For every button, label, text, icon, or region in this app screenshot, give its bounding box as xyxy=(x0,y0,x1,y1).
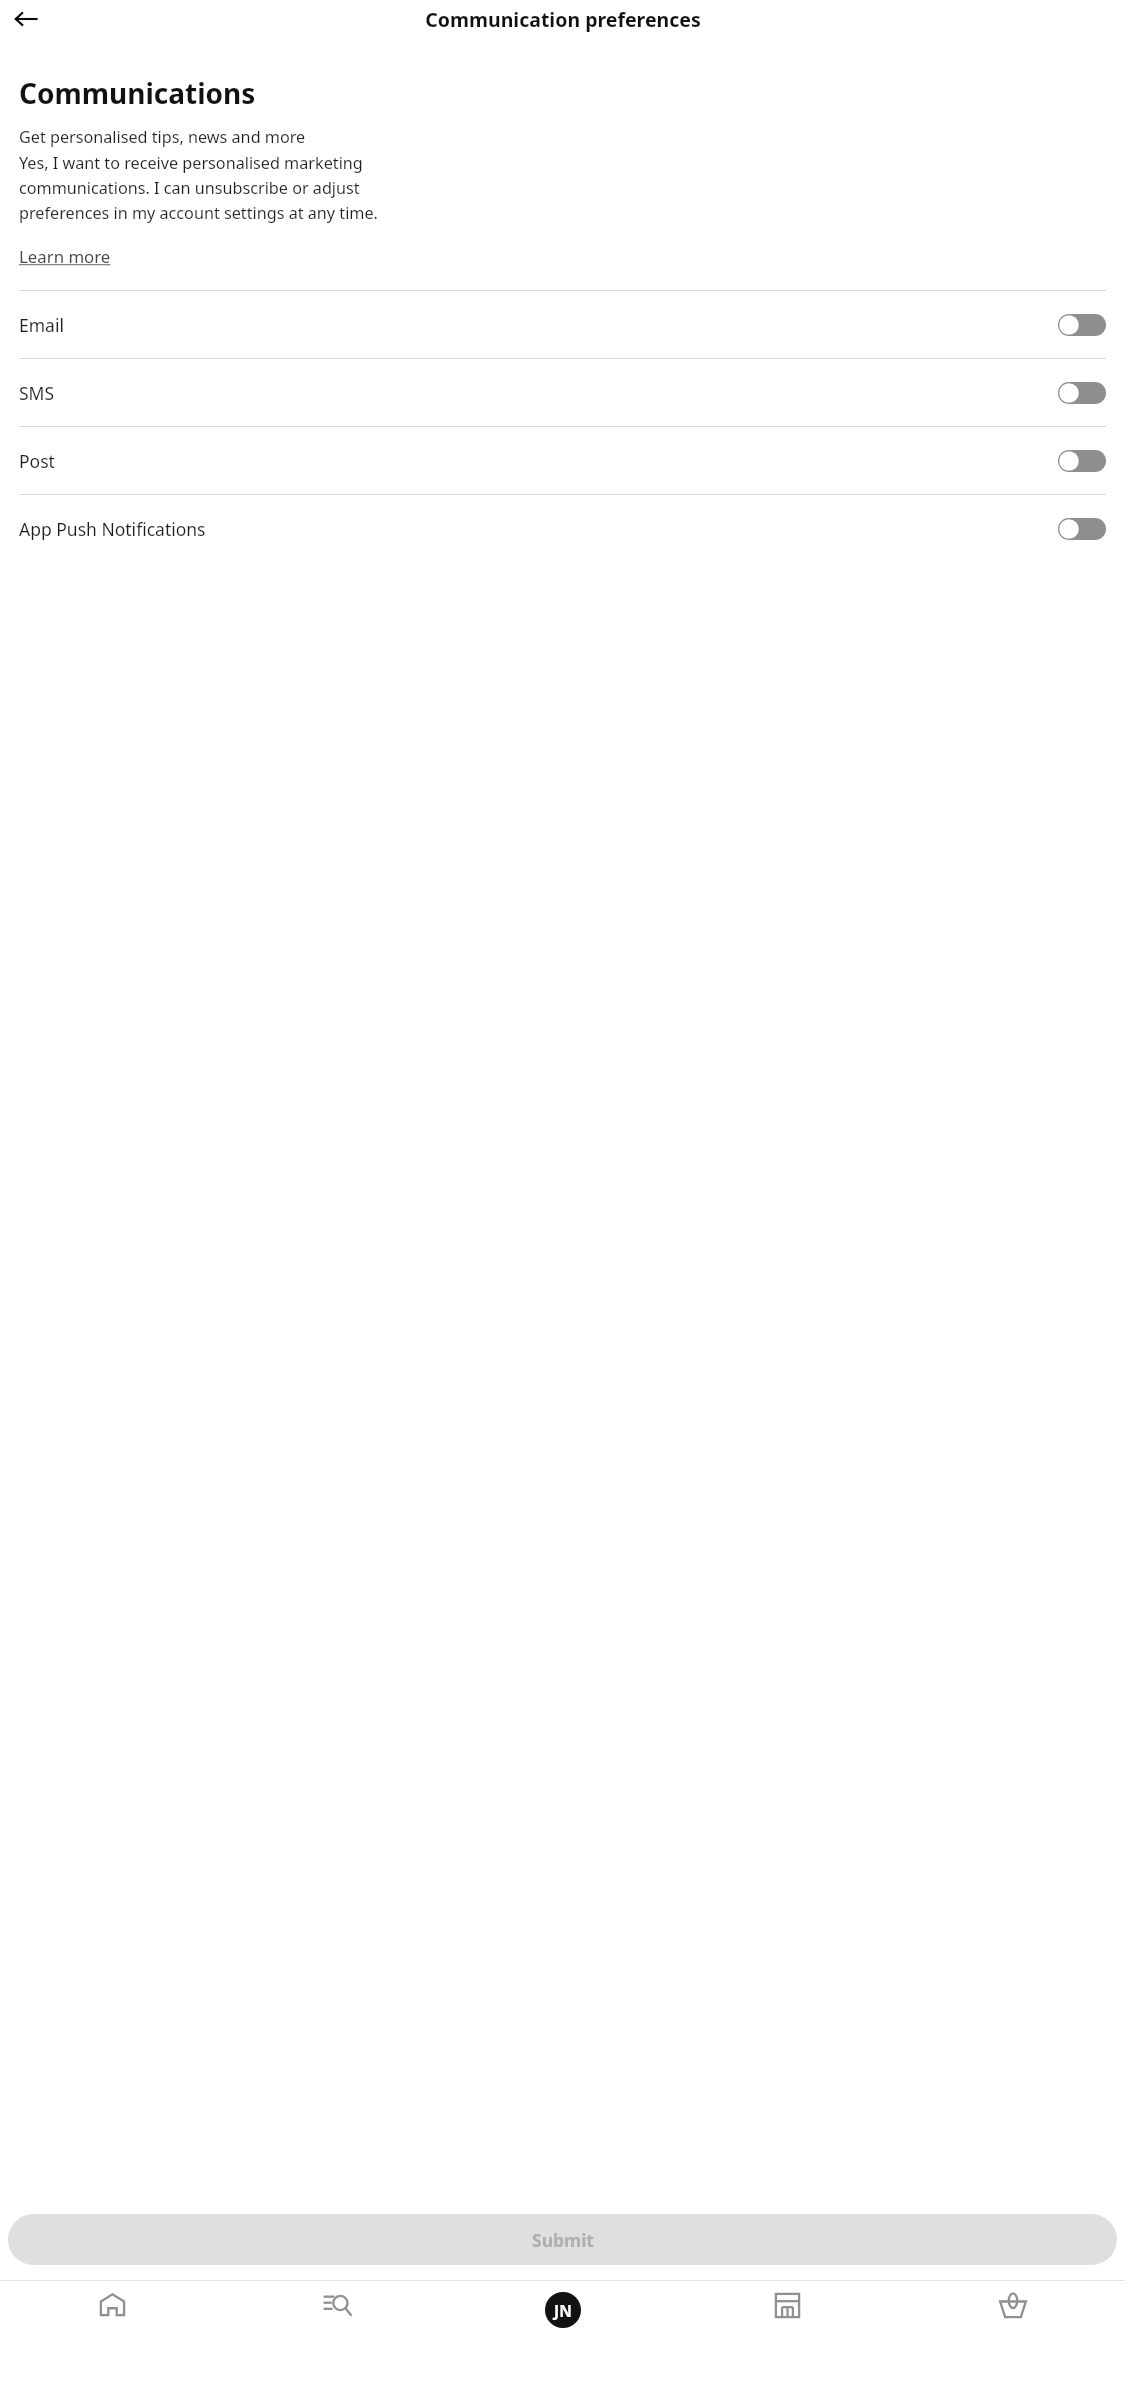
button[interactable]: Learn more xyxy=(19,243,111,270)
staticText: Communications xyxy=(19,74,256,112)
button[interactable]: Account xyxy=(450,2281,675,2382)
staticText: App Push Notifications xyxy=(19,517,1058,541)
button[interactable]: Stores xyxy=(675,2281,900,2382)
staticText: Learn more xyxy=(19,245,111,268)
button[interactable]: Submit xyxy=(8,2214,1117,2265)
button[interactable]: Email xyxy=(0,291,1125,358)
other: Toggle xyxy=(1058,450,1106,472)
other: Toggle xyxy=(1058,382,1106,404)
other: Toggle xyxy=(1058,314,1106,336)
button[interactable]: Back xyxy=(4,0,48,38)
button[interactable]: App Push Notifications xyxy=(0,495,1125,562)
staticText: JN xyxy=(554,2300,572,2321)
staticText: Get personalised tips, news and more Yes… xyxy=(19,126,378,224)
button[interactable]: Post xyxy=(0,427,1125,494)
staticText: Submit xyxy=(532,2228,594,2252)
other: Toggle xyxy=(1058,518,1106,540)
staticText: SMS xyxy=(19,381,1058,405)
staticText: Email xyxy=(19,313,1058,337)
button[interactable]: Search xyxy=(225,2281,450,2382)
button[interactable]: Home xyxy=(0,2281,225,2382)
staticText: Communication preferences xyxy=(425,6,701,33)
staticText: Post xyxy=(19,449,1058,473)
button[interactable]: Basket xyxy=(900,2281,1125,2382)
button[interactable]: SMS xyxy=(0,359,1125,426)
